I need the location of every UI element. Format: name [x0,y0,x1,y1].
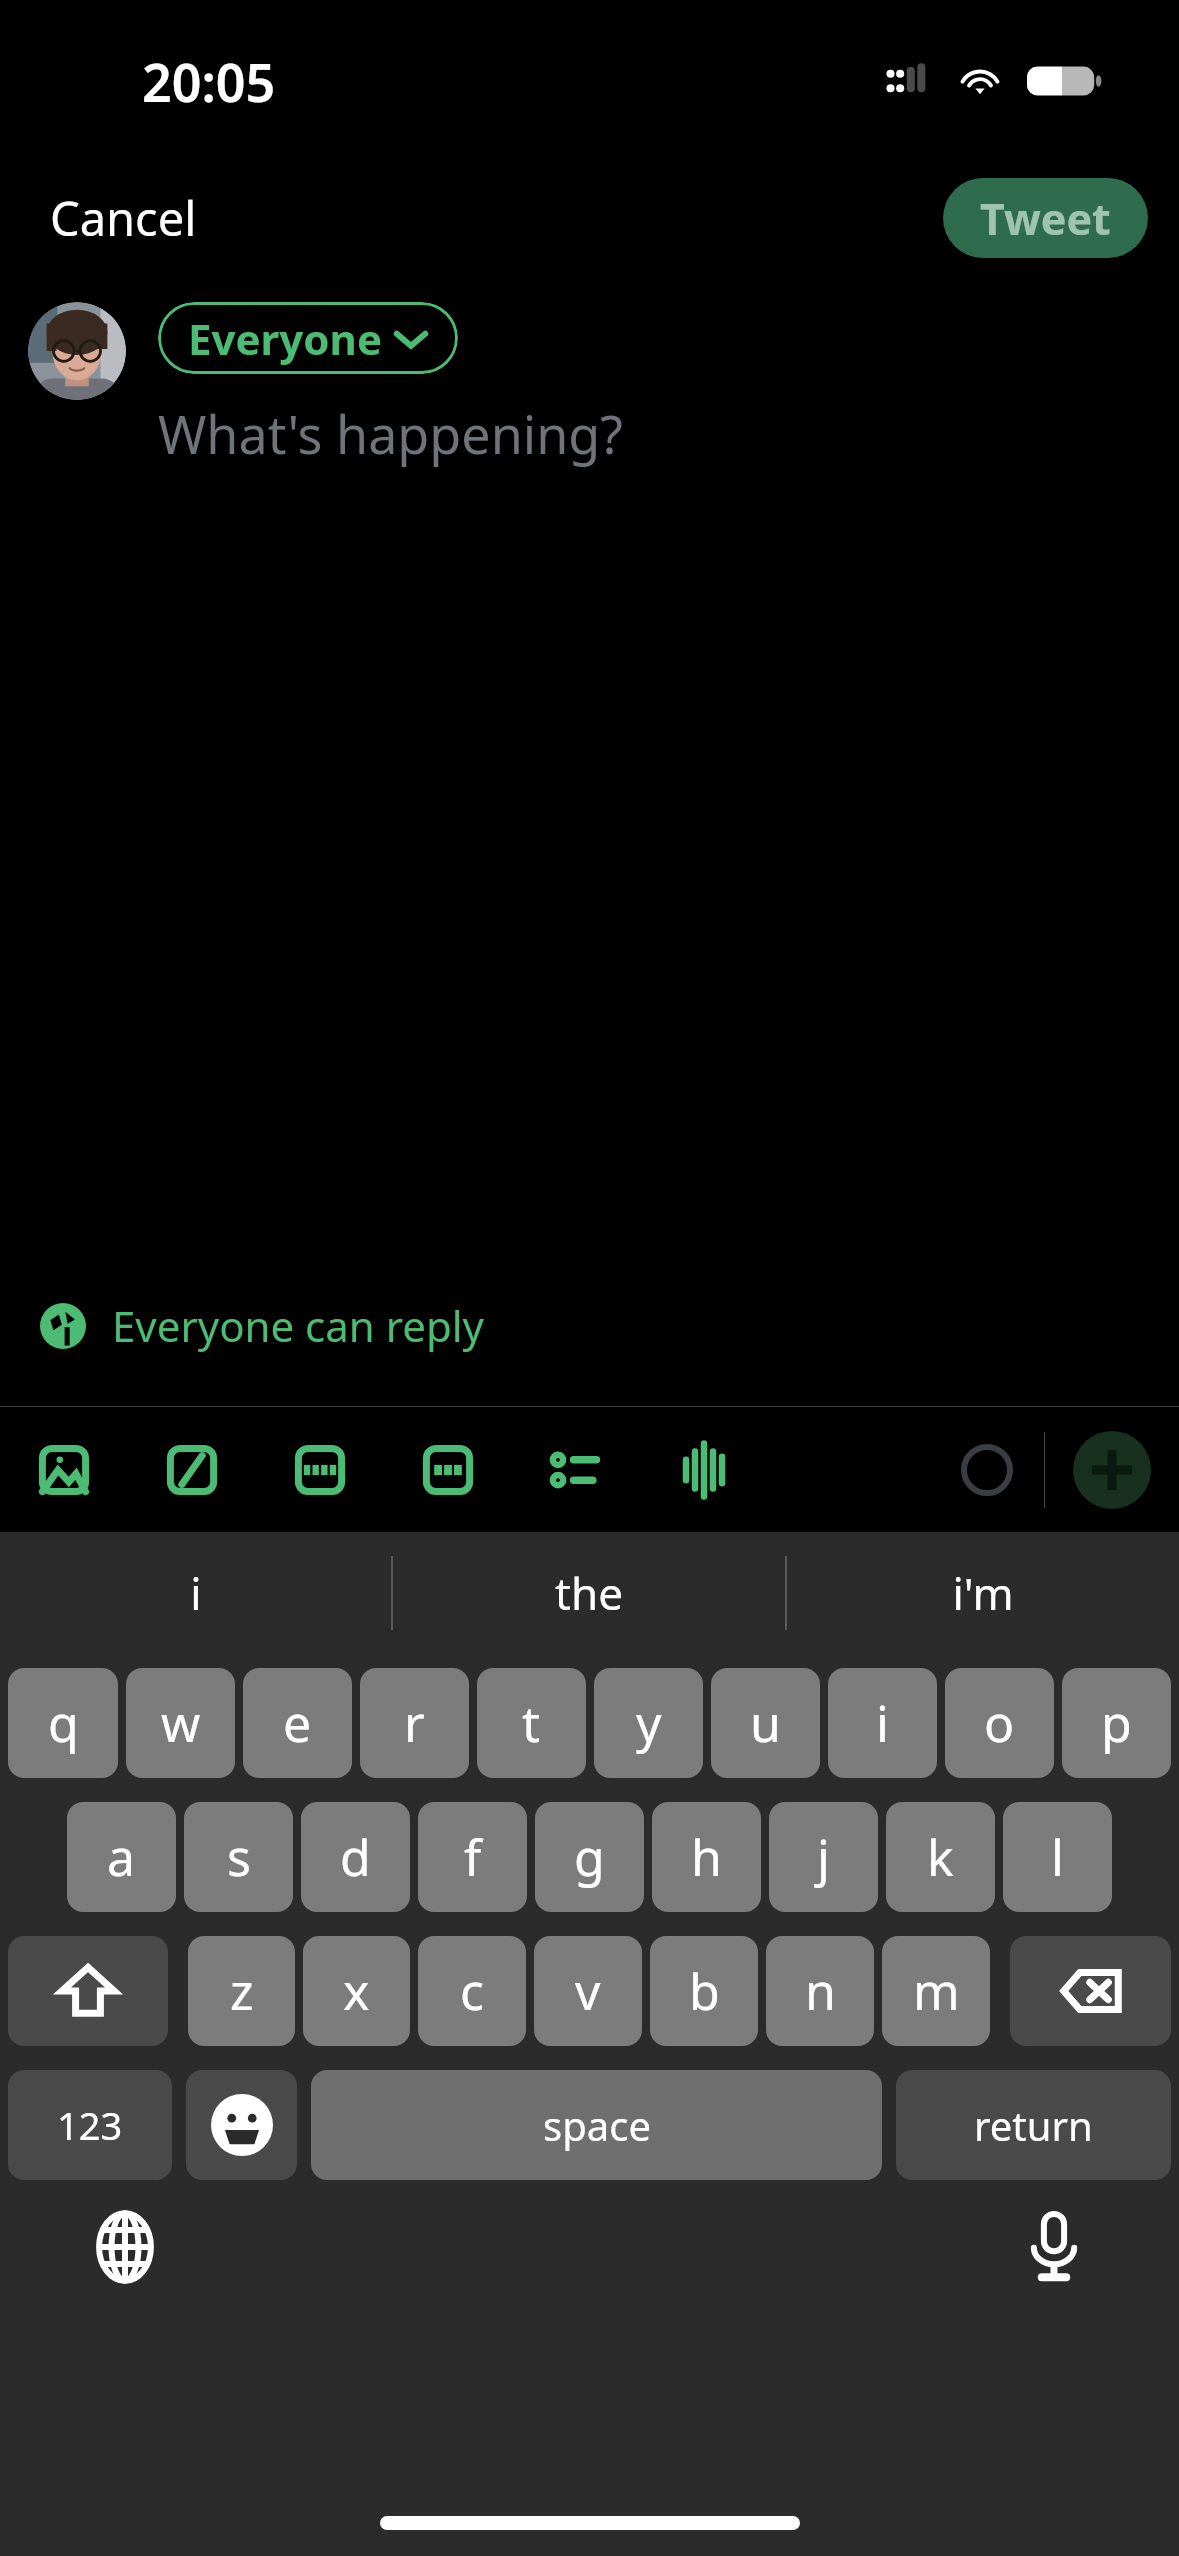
staticText: m [913,1957,960,2025]
button[interactable]: Add tweet [1073,1431,1151,1509]
staticText: 123 [57,2099,123,2151]
button[interactable]: Shift [8,1936,168,2046]
staticText: s [227,1823,251,1891]
button[interactable]: Poll [540,1434,612,1506]
button[interactable]: o [945,1668,1054,1778]
button[interactable]: 123 [8,2070,172,2180]
staticText: y [636,1689,662,1757]
button[interactable]: Everyone [158,302,458,374]
staticText: d [340,1823,371,1891]
button[interactable]: i [0,1532,391,1654]
button[interactable]: return [896,2070,1171,2180]
button[interactable]: i'm [787,1532,1179,1654]
staticText: c [460,1957,484,2025]
button[interactable]: c [418,1936,526,2046]
button[interactable]: Tweet [943,178,1148,258]
staticText: x [343,1957,370,2025]
staticText: h [691,1823,722,1891]
staticText: l [1051,1823,1064,1891]
staticText: Everyone can reply [112,1297,484,1354]
staticText: space [543,2098,651,2152]
staticText: k [927,1823,954,1891]
button[interactable]: s [184,1802,293,1912]
staticText: u [750,1689,781,1757]
staticText: a [107,1823,136,1891]
button[interactable]: y [594,1668,703,1778]
staticText: q [48,1689,79,1757]
button[interactable]: p [1062,1668,1171,1778]
button[interactable]: f [418,1802,527,1912]
button[interactable]: Voice [668,1434,740,1506]
button[interactable]: e [243,1668,352,1778]
staticText: o [984,1689,1015,1757]
staticText: j [817,1823,830,1891]
button[interactable]: l [1003,1802,1112,1912]
button[interactable]: w [126,1668,235,1778]
button[interactable]: Live video [284,1434,356,1506]
staticText: Tweet [980,189,1111,248]
button[interactable]: u [711,1668,820,1778]
staticText: p [1101,1689,1132,1757]
staticText: What's happening? [158,398,623,469]
button[interactable]: g [535,1802,644,1912]
button[interactable]: Emoji [186,2070,297,2180]
button[interactable]: Add photo [28,1434,100,1506]
button[interactable]: Character count [952,1435,1022,1505]
button[interactable]: t [477,1668,586,1778]
button[interactable]: z [188,1936,295,2046]
button[interactable]: Voice input [1011,2204,1097,2290]
button[interactable]: space [311,2070,882,2180]
staticText: the [555,1563,623,1623]
staticText: i'm [952,1563,1014,1623]
button[interactable]: b [650,1936,758,2046]
button[interactable]: r [360,1668,469,1778]
button[interactable]: k [886,1802,995,1912]
button[interactable]: x [303,1936,410,2046]
button[interactable]: j [769,1802,878,1912]
staticText: b [689,1957,720,2025]
staticText: r [404,1689,425,1757]
staticText: g [574,1823,605,1891]
staticText: i [876,1689,889,1757]
staticText: z [230,1957,254,2025]
button[interactable]: Profile photo [28,302,126,400]
button[interactable]: i [828,1668,937,1778]
button[interactable]: v [534,1936,642,2046]
staticText: n [805,1957,836,2025]
button[interactable]: Cancel [30,174,217,262]
button[interactable]: Change keyboard language [82,2204,168,2290]
staticText: i [190,1563,202,1623]
button[interactable]: h [652,1802,761,1912]
button[interactable]: Backspace [1010,1936,1171,2046]
staticText: t [522,1689,541,1757]
button[interactable]: q [8,1668,118,1778]
button[interactable]: m [882,1936,990,2046]
staticText: w [161,1689,201,1757]
button[interactable]: a [67,1802,176,1912]
button[interactable]: Everyone can reply [0,1289,1179,1362]
staticText: Everyone [188,310,382,367]
staticText: return [974,2098,1093,2152]
button[interactable]: the [393,1532,785,1654]
button[interactable]: Draw [156,1434,228,1506]
button[interactable]: GIF [412,1434,484,1506]
staticText: Cancel [50,186,197,250]
button[interactable]: n [766,1936,874,2046]
button[interactable]: d [301,1802,410,1912]
staticText: v [575,1957,601,2025]
staticText: 20:05 [142,46,276,117]
staticText: e [283,1689,312,1757]
staticText: f [464,1823,482,1891]
